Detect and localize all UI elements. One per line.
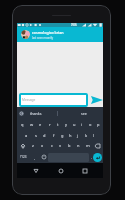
staticText: n: [77, 143, 80, 148]
staticText: g: [61, 133, 64, 138]
staticText: t: [57, 122, 59, 127]
staticText: ,: [34, 155, 35, 160]
staticText: i: [81, 122, 83, 127]
button[interactable]: Backspace: [92, 140, 103, 151]
staticText: v: [59, 143, 62, 148]
button[interactable]: h: [66, 130, 74, 140]
staticText: c: [51, 143, 53, 148]
staticText: a: [25, 133, 28, 138]
button[interactable]: Home: [55, 165, 66, 176]
button[interactable]: g: [58, 130, 66, 140]
button[interactable]: r: [45, 119, 54, 130]
button[interactable]: Enter: [93, 153, 102, 162]
staticText: r: [49, 122, 51, 127]
button[interactable]: y: [62, 119, 70, 130]
staticText: q: [21, 122, 24, 127]
button[interactable]: l: [90, 130, 98, 140]
staticText: last seen recently: [32, 36, 54, 40]
staticText: d: [43, 133, 46, 138]
staticText: m: [86, 143, 90, 148]
button[interactable]: see: [81, 107, 87, 119]
button[interactable]: Emoji: [39, 151, 49, 163]
button[interactable]: Recents: [79, 165, 90, 176]
staticText: see: [81, 111, 87, 116]
button[interactable]: n: [74, 140, 83, 151]
staticText: w: [30, 122, 34, 127]
button[interactable]: Comma: [29, 151, 39, 163]
button[interactable]: z: [28, 140, 38, 151]
button[interactable]: v: [56, 140, 65, 151]
staticText: 7:06: [71, 23, 77, 27]
staticText: l: [93, 133, 95, 138]
button[interactable]: Message: [19, 93, 88, 107]
staticText: k: [85, 133, 88, 138]
button[interactable]: thanks: [30, 107, 42, 119]
staticText: u: [73, 122, 76, 127]
button[interactable]: e: [36, 119, 45, 130]
button[interactable]: b: [65, 140, 74, 151]
button[interactable]: k: [82, 130, 90, 140]
staticText: f: [53, 133, 55, 138]
staticText: cosmologico brian: [32, 30, 64, 35]
button[interactable]: Shift: [17, 140, 28, 151]
button[interactable]: d: [40, 130, 49, 140]
button[interactable]: ?123: [17, 151, 29, 163]
button[interactable]: m: [83, 140, 92, 151]
button[interactable]: f: [49, 130, 58, 140]
staticText: s: [35, 133, 37, 138]
staticText: .: [91, 155, 92, 160]
button[interactable]: a: [22, 130, 31, 140]
button[interactable]: j: [74, 130, 82, 140]
button[interactable]: [19, 111, 24, 116]
staticText: e: [39, 122, 42, 127]
staticText: b: [68, 143, 71, 148]
button[interactable]: s: [31, 130, 40, 140]
button[interactable]: Back: [30, 165, 41, 176]
button[interactable]: .: [89, 151, 94, 163]
button[interactable]: t: [54, 119, 62, 130]
button[interactable]: p: [94, 119, 102, 130]
button[interactable]: c: [47, 140, 56, 151]
staticText: thanks: [30, 111, 42, 116]
staticText: ?123: [20, 155, 27, 159]
button[interactable]: i: [78, 119, 86, 130]
staticText: Message: [22, 98, 36, 102]
staticText: j: [77, 133, 79, 138]
staticText: h: [69, 133, 72, 138]
staticText: z: [32, 143, 34, 148]
staticText: x: [41, 143, 44, 148]
button[interactable]: q: [18, 119, 27, 130]
button[interactable]: w: [27, 119, 36, 130]
button[interactable]: x: [38, 140, 47, 151]
button[interactable]: o: [86, 119, 94, 130]
staticText: o: [89, 122, 92, 127]
button[interactable]: u: [70, 119, 78, 130]
button[interactable]: Send: [90, 93, 103, 107]
staticText: p: [97, 122, 100, 127]
staticText: y: [65, 122, 68, 127]
